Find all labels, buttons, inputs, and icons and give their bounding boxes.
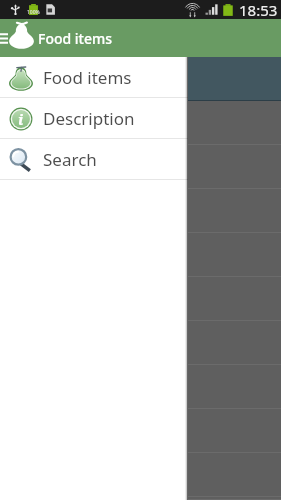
- staticText: Description: [43, 107, 135, 130]
- button[interactable]: Food items: [0, 57, 188, 98]
- staticText: Food items: [38, 29, 113, 48]
- button[interactable]: Search: [0, 139, 188, 180]
- button[interactable]: i: [0, 98, 188, 139]
- staticText: i: [18, 109, 24, 129]
- button[interactable]: Open navigation drawer: [0, 26, 11, 50]
- staticText: Food items: [43, 66, 132, 89]
- staticText: Search: [43, 148, 97, 171]
- staticText: 100%: [27, 9, 40, 16]
- staticText: 18:53: [239, 0, 278, 19]
